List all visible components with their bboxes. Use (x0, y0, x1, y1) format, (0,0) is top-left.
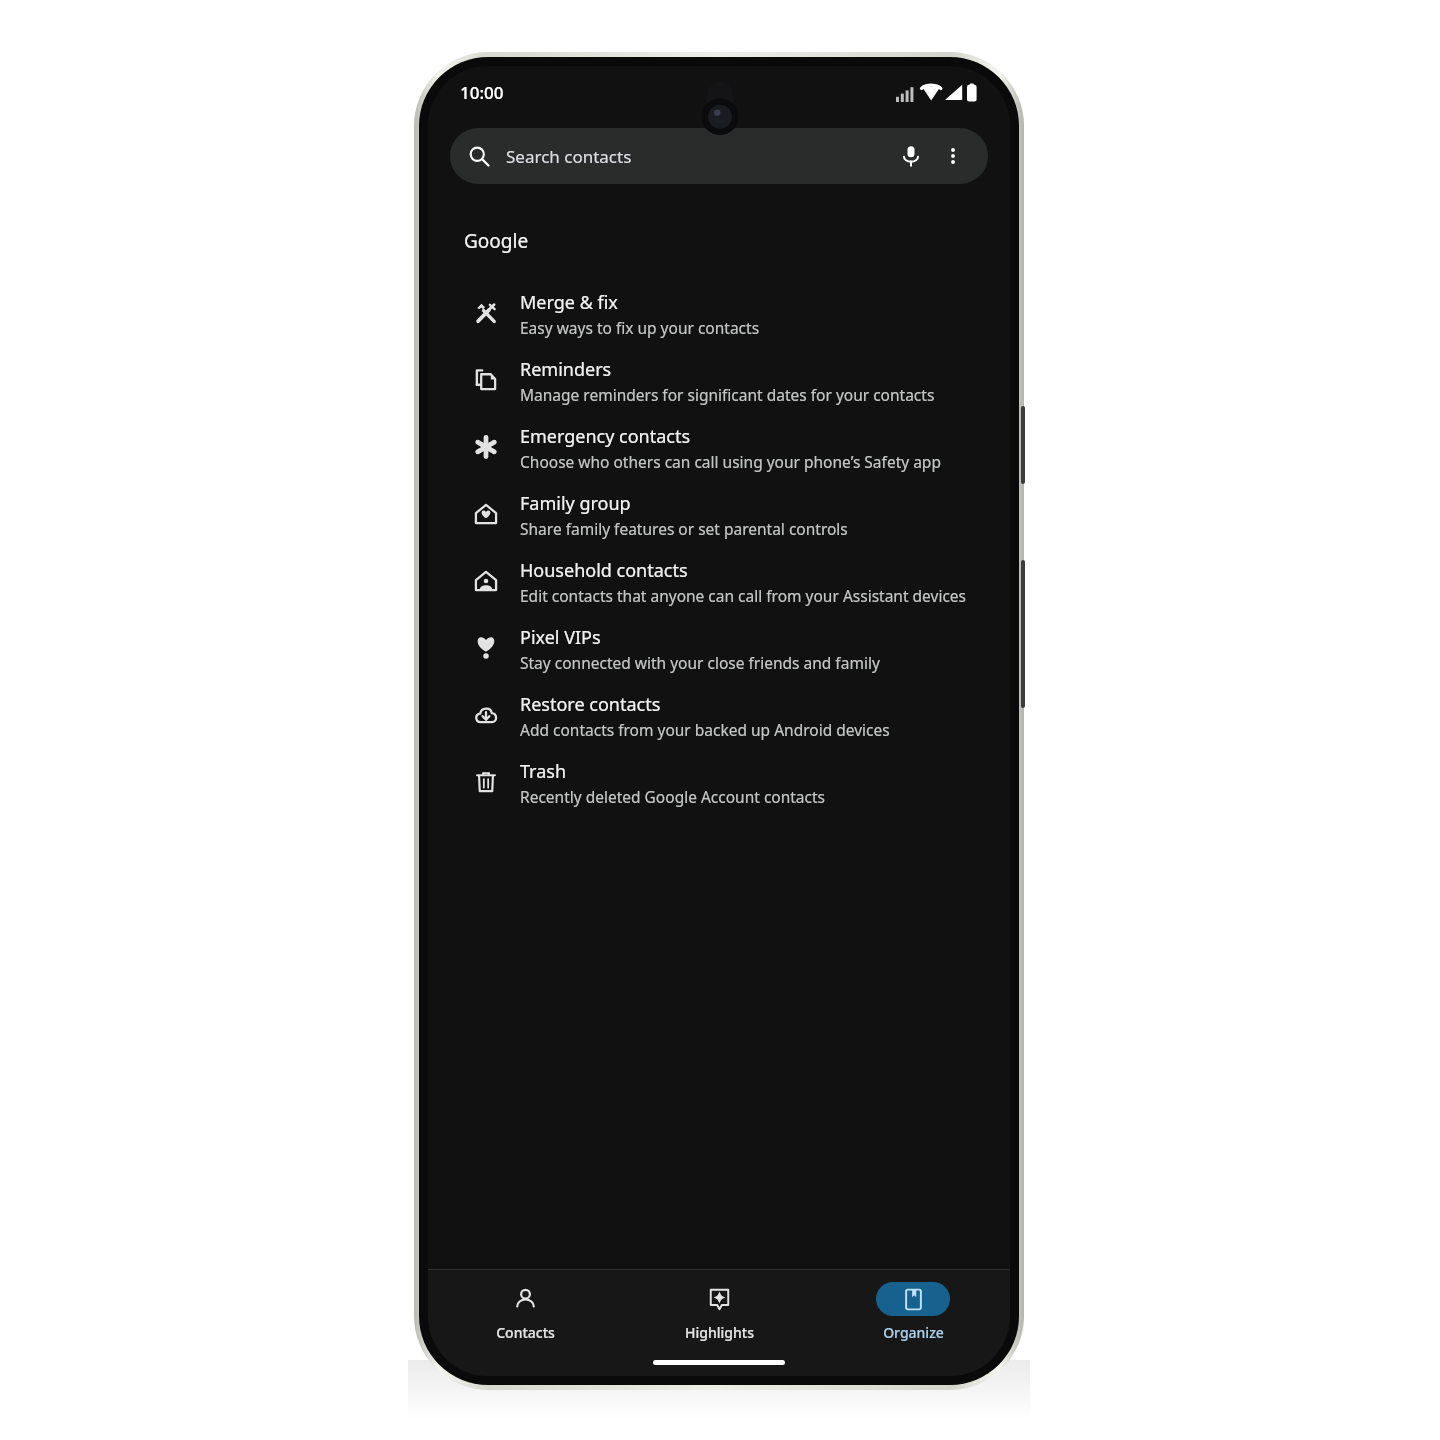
staticText: Merge & fix (520, 290, 618, 315)
staticText: Organize (883, 1323, 944, 1342)
staticText: Share family features or set parental co… (520, 518, 848, 539)
staticText: Google (464, 228, 529, 254)
button[interactable]: Merge & fix (428, 280, 1010, 347)
staticText: Add contacts from your backed up Android… (520, 719, 890, 740)
button[interactable]: Household contacts (428, 548, 1010, 615)
button[interactable]: Search contacts (450, 128, 988, 184)
staticText: Edit contacts that anyone can call from … (520, 585, 966, 606)
staticText: 10:00 (460, 81, 504, 104)
button[interactable]: Contacts (428, 1280, 622, 1344)
staticText: Reminders (520, 357, 612, 382)
button[interactable]: Voice search (894, 139, 928, 173)
button[interactable]: More options (936, 139, 970, 173)
button[interactable]: Restore contacts (428, 682, 1010, 749)
staticText: Recently deleted Google Account contacts (520, 786, 826, 807)
staticText: Household contacts (520, 558, 688, 583)
staticText: Choose who others can call using your ph… (520, 451, 941, 472)
staticText: Manage reminders for significant dates f… (520, 384, 935, 405)
staticText: Emergency contacts (520, 424, 691, 449)
button[interactable]: Emergency contacts (428, 414, 1010, 481)
button[interactable]: Organize (816, 1280, 1010, 1344)
staticText: Contacts (496, 1323, 555, 1342)
button[interactable]: Reminders (428, 347, 1010, 414)
button[interactable]: Highlights (622, 1280, 816, 1344)
staticText: Restore contacts (520, 692, 661, 717)
staticText: Easy ways to fix up your contacts (520, 317, 760, 338)
staticText: Pixel VIPs (520, 625, 601, 650)
staticText: Stay connected with your close friends a… (520, 652, 880, 673)
button[interactable]: Family group (428, 481, 1010, 548)
staticText: Highlights (685, 1323, 754, 1342)
staticText: Family group (520, 491, 631, 516)
button[interactable]: Trash (428, 749, 1010, 816)
staticText: Trash (520, 759, 567, 784)
staticText: Search contacts (506, 145, 632, 168)
button[interactable]: Pixel VIPs (428, 615, 1010, 682)
